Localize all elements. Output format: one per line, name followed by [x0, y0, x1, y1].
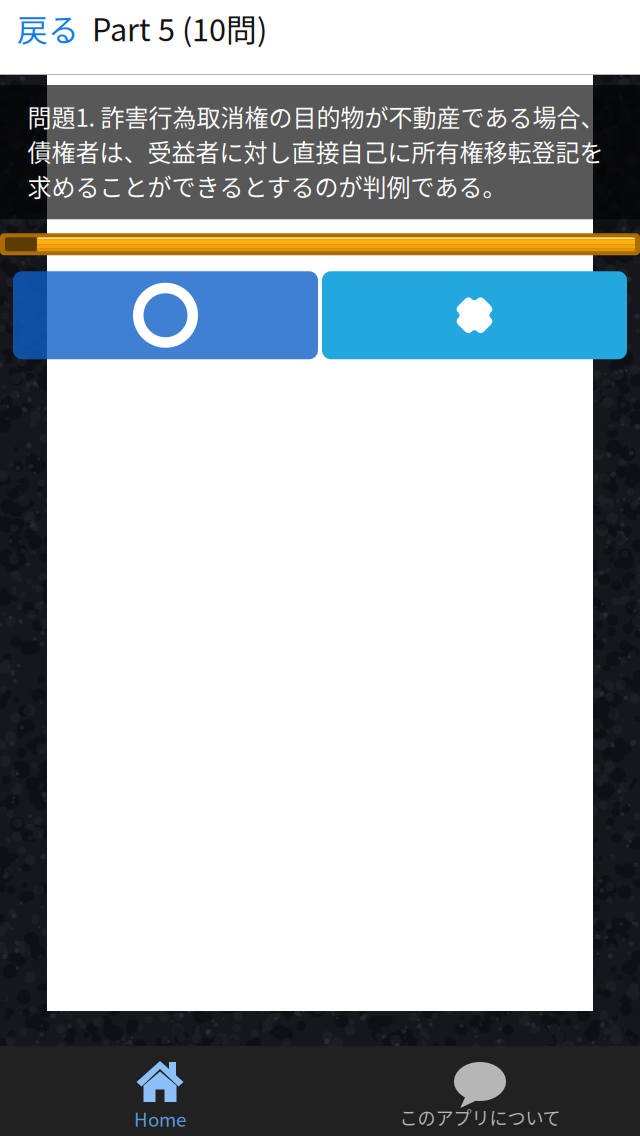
button[interactable]: Home [0, 1046, 320, 1136]
button[interactable]: このアプリについて [320, 1046, 640, 1136]
staticText: このアプリについて [399, 1104, 560, 1130]
button[interactable]: 戻る [0, 0, 92, 56]
staticText: Home [134, 1105, 186, 1132]
staticText: 戻る [17, 6, 79, 50]
button[interactable]: ○ まる [13, 271, 318, 359]
staticText: 問題1. 詐害行為取消権の目的物が不動産である場合、債権者は、受益者に対し直接自… [27, 99, 604, 203]
staticText: Part 5 (10問) [92, 6, 267, 50]
button[interactable]: ✕ ばつ [322, 271, 627, 359]
